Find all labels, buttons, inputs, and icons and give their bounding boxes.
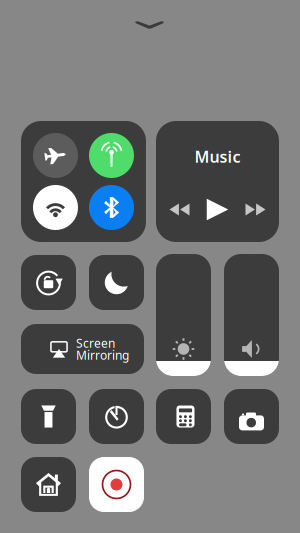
button[interactable]: Play: [202, 195, 232, 223]
button[interactable]: Next Track: [240, 195, 270, 223]
button[interactable]: Brightness: [156, 254, 211, 376]
button[interactable]: Home: [21, 457, 76, 512]
button[interactable]: Timer: [89, 389, 144, 444]
staticText: Screen: [76, 335, 115, 351]
button[interactable]: Screen Mirroring: [21, 324, 144, 374]
button[interactable]: Cellular Data: [89, 133, 134, 178]
button[interactable]: Screen Recording: [89, 457, 144, 512]
button[interactable]: Previous Track: [164, 195, 194, 223]
button[interactable]: Camera: [224, 389, 279, 444]
button[interactable]: Flashlight: [21, 389, 76, 444]
button[interactable]: Volume: [224, 254, 279, 376]
button[interactable]: Close Control Center: [126, 10, 172, 40]
staticText: Music: [194, 146, 240, 167]
button[interactable]: Airplane Mode: [33, 133, 78, 178]
button[interactable]: Calculator: [156, 389, 211, 444]
button[interactable]: Do Not Disturb: [89, 255, 144, 310]
button[interactable]: Wi-Fi: [33, 185, 78, 230]
staticText: Mirroring: [76, 347, 129, 363]
button[interactable]: Bluetooth: [89, 185, 134, 230]
button[interactable]: Rotation Lock: [21, 255, 76, 310]
